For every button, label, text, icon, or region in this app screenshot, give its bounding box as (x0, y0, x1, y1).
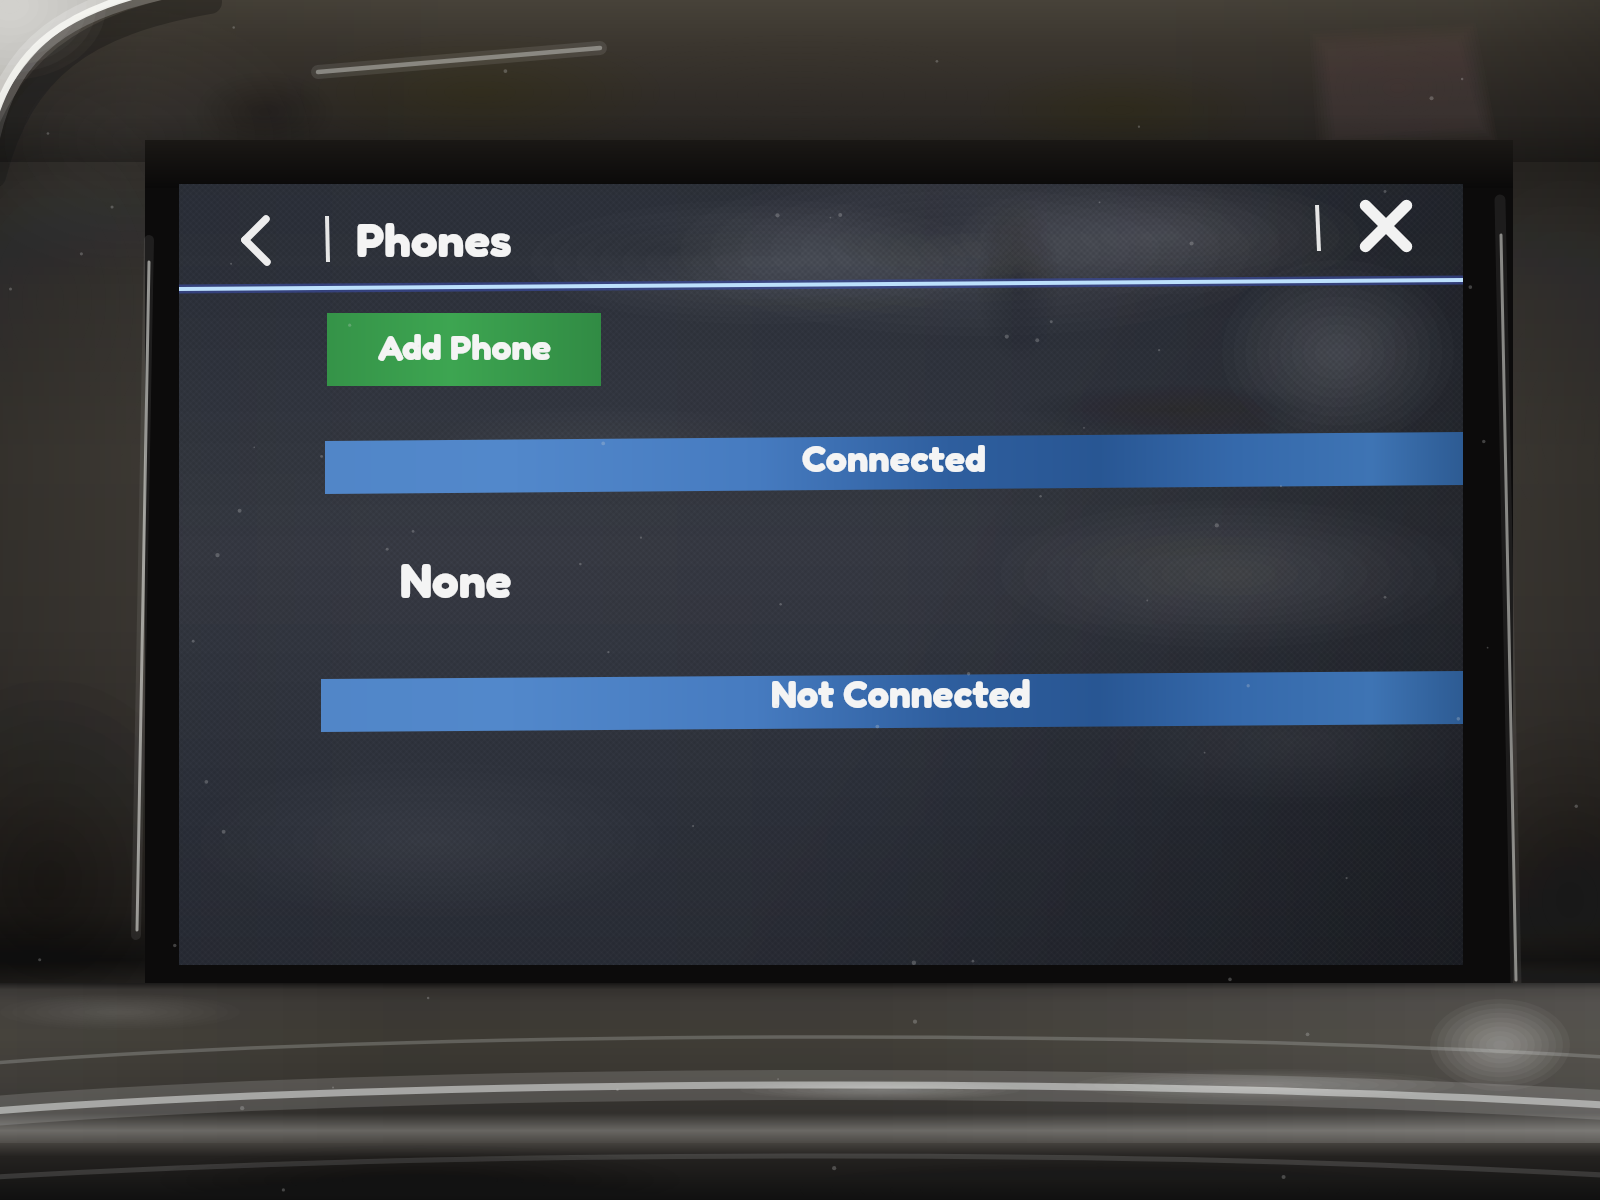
button[interactable]: Not Connected (321, 668, 1470, 730)
button[interactable]: Add Phone (327, 313, 601, 386)
button[interactable]: Connected (325, 430, 1460, 492)
button[interactable]: Close (1340, 185, 1435, 271)
button[interactable]: Back (218, 200, 310, 282)
